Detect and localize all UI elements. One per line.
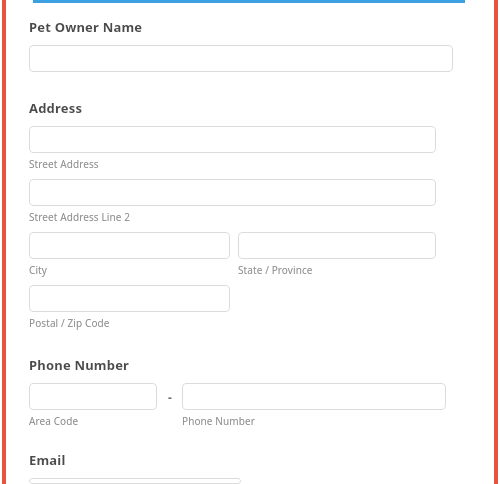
staticText: Street Address Line 2 [29, 210, 131, 224]
button[interactable]: Street Address [29, 126, 436, 153]
staticText: Pet Owner Name [29, 18, 143, 36]
staticText: Phone Number [182, 414, 255, 428]
staticText: Email [29, 451, 66, 469]
button[interactable]: Street Address Line 2 [29, 179, 436, 206]
button[interactable]: Postal / Zip Code [29, 285, 230, 312]
button[interactable]: State / Province [238, 232, 436, 259]
staticText: State / Province [238, 263, 313, 277]
staticText: Area Code [29, 414, 79, 428]
staticText: Address [29, 99, 83, 117]
staticText: - [168, 389, 172, 405]
staticText: Phone Number [29, 356, 130, 374]
staticText: City [29, 263, 48, 277]
staticText: Postal / Zip Code [29, 316, 110, 330]
button[interactable]: Area Code [29, 383, 157, 410]
button[interactable]: Phone Number [182, 383, 446, 410]
button[interactable]: City [29, 232, 230, 259]
button[interactable]: Email [29, 478, 241, 484]
staticText: Street Address [29, 157, 99, 171]
button[interactable]: Pet Owner Name [29, 45, 453, 72]
